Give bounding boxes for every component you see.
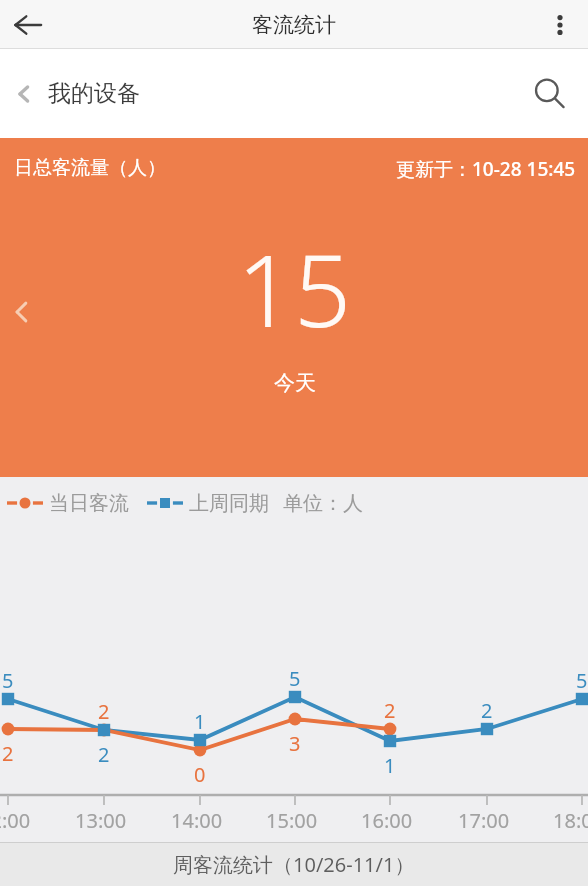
staticText: 单位：人 (283, 491, 363, 516)
staticText: 2 (481, 697, 493, 724)
button[interactable]: 日总客流量（人） (0, 138, 588, 477)
staticText: 17:00 (458, 807, 510, 834)
button[interactable]: Back (0, 0, 56, 49)
staticText: 18:00 (553, 807, 588, 834)
staticText: 2 (98, 741, 110, 768)
staticText: 今天 (274, 370, 316, 396)
staticText: 2 (384, 697, 396, 724)
staticText: 5 (289, 665, 301, 692)
staticText: 更新于：10-28 15:45 (396, 156, 576, 182)
staticText: 客流统计 (252, 12, 336, 38)
staticText: 上周同期 (189, 491, 269, 516)
staticText: 1 (384, 752, 396, 779)
button[interactable]: 周客流统计（10/26-11/1） (0, 842, 588, 886)
staticText: 14:00 (171, 807, 223, 834)
staticText: 12:00 (0, 807, 31, 834)
button[interactable]: Previous day (0, 289, 46, 335)
staticText: 我的设备 (48, 79, 140, 108)
staticText: 5 (2, 667, 14, 694)
staticText: 15:00 (266, 807, 318, 834)
staticText: 1 (194, 708, 206, 735)
staticText: 0 (194, 761, 206, 788)
button[interactable]: 我的设备 (0, 49, 140, 138)
button[interactable]: More options (532, 0, 588, 49)
staticText: 日总客流量（人） (14, 156, 166, 180)
staticText: 16:00 (361, 807, 413, 834)
staticText: 周客流统计（10/26-11/1） (173, 851, 415, 878)
staticText: 13:00 (75, 807, 127, 834)
staticText: 15 (237, 220, 352, 356)
button[interactable]: Search (510, 49, 588, 138)
staticText: 当日客流 (49, 491, 129, 516)
staticText: 3 (289, 730, 301, 757)
staticText: 2 (2, 740, 14, 767)
staticText: 5 (576, 667, 588, 694)
staticText: 2 (98, 698, 110, 725)
